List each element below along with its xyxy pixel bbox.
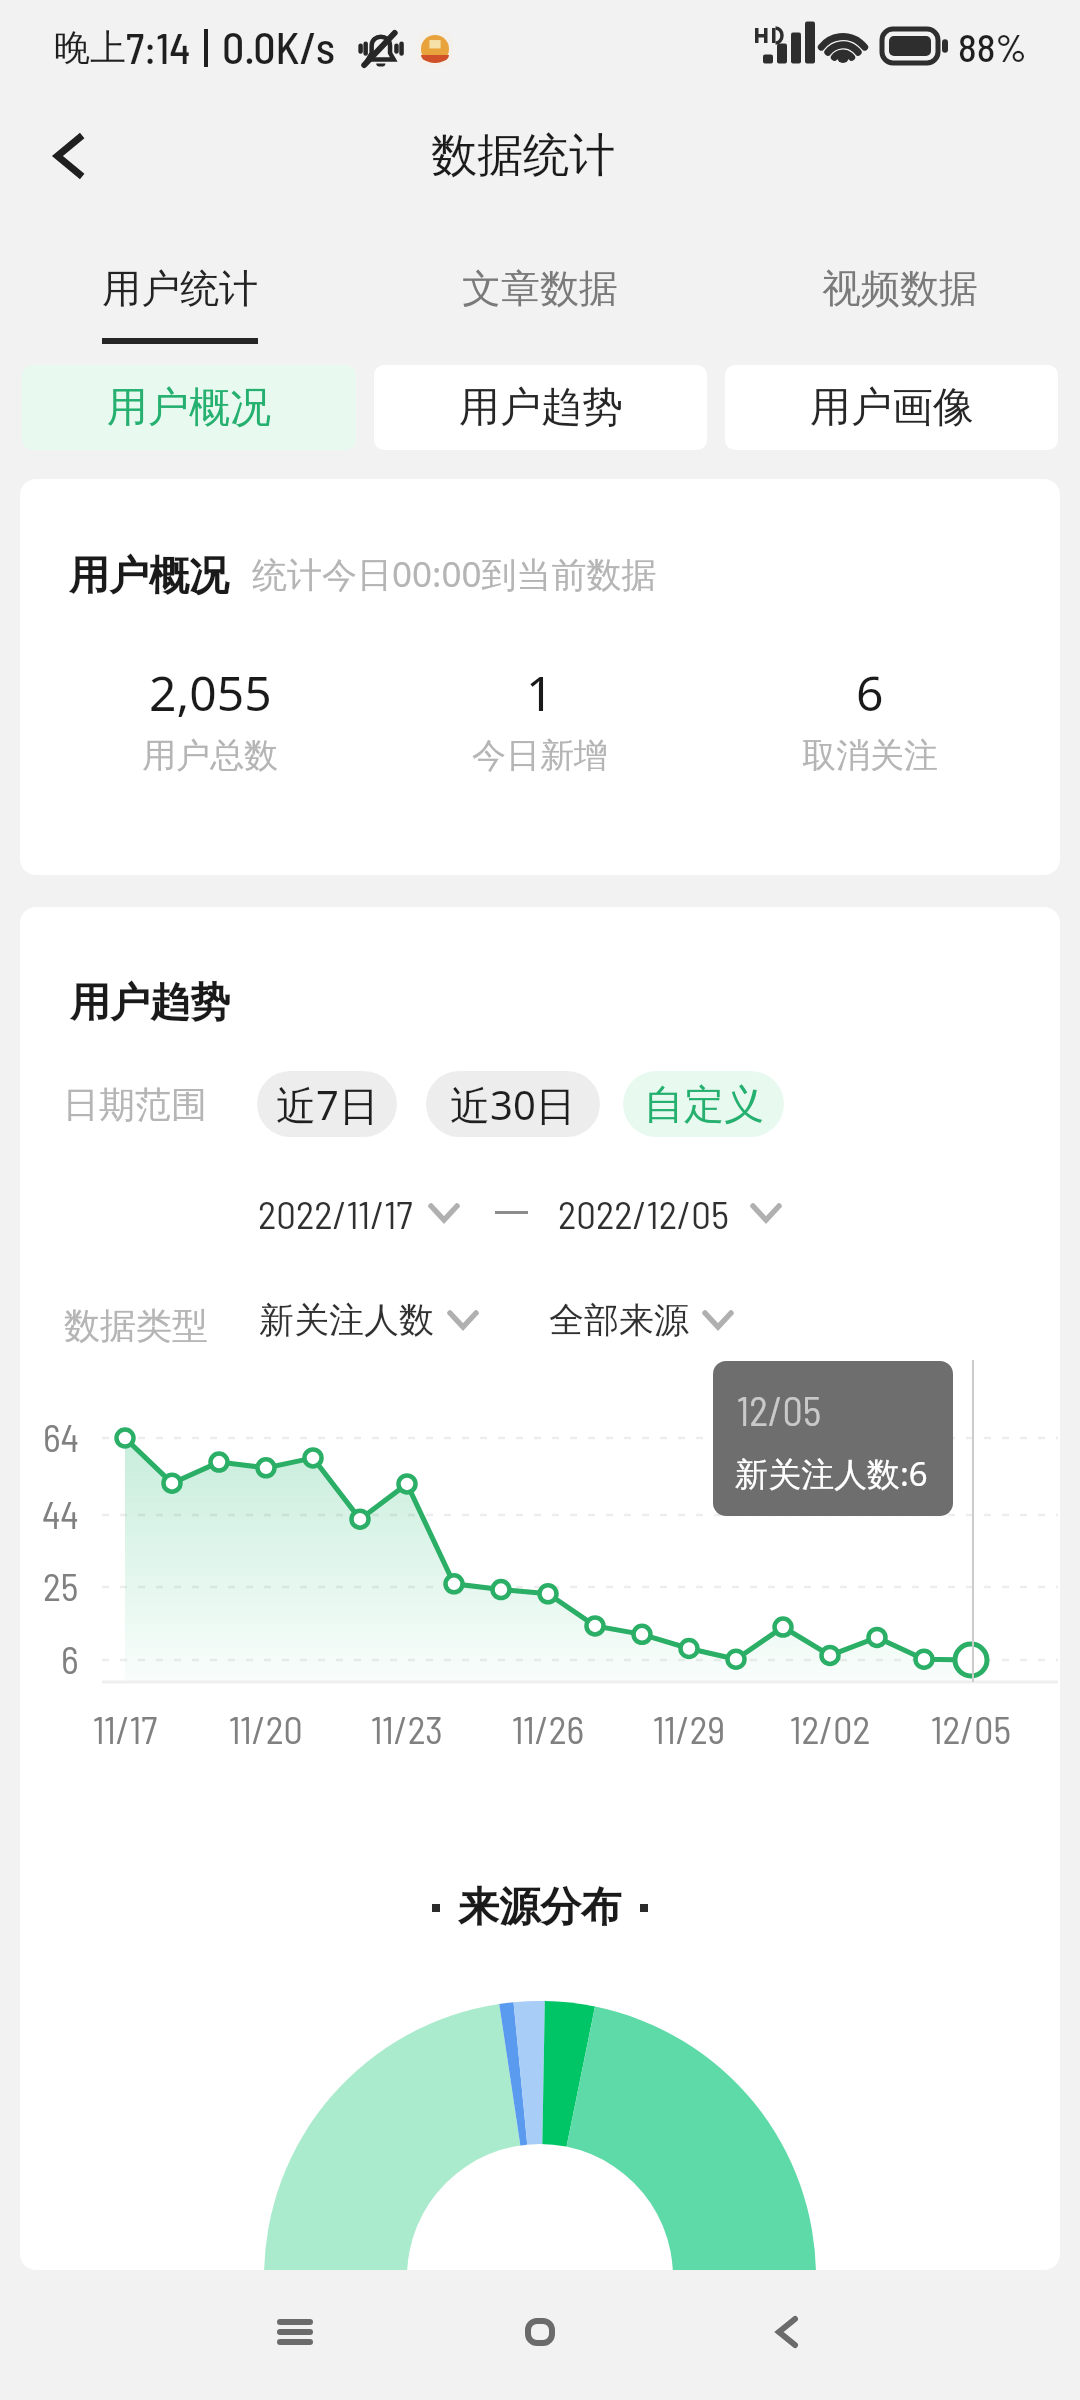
staticText: 用户统计	[102, 264, 258, 313]
staticText: 用户趋势	[459, 382, 623, 434]
staticText: 文章数据	[462, 264, 618, 313]
button[interactable]: 全部来源	[549, 1297, 733, 1343]
button[interactable]: 文章数据	[360, 236, 720, 346]
staticText: 用户画像	[810, 382, 974, 434]
button[interactable]: Recent apps	[235, 2272, 355, 2392]
staticText: 12/05	[931, 1706, 1011, 1752]
staticText: 近7日	[276, 1077, 379, 1132]
staticText: 7:14	[126, 22, 191, 72]
staticText: 今日新增	[472, 734, 608, 777]
staticText: 晚上	[54, 25, 126, 70]
staticText: 来源分布	[458, 1882, 622, 1934]
button[interactable]: 近30日	[426, 1071, 600, 1137]
button[interactable]: 用户画像	[725, 365, 1058, 450]
button[interactable]: 2022/11/17	[258, 1190, 459, 1236]
button[interactable]: 用户趋势	[374, 365, 707, 450]
staticText: 11/23	[371, 1706, 443, 1752]
staticText: 用户趋势	[70, 977, 230, 1027]
staticText: 64	[43, 1414, 79, 1460]
button[interactable]: 用户概况	[22, 365, 356, 450]
staticText: 0.0K/s	[222, 20, 336, 73]
staticText: 自定义	[644, 1079, 764, 1129]
button[interactable]: 2022/12/05	[558, 1190, 781, 1236]
staticText: 11/26	[512, 1706, 585, 1752]
staticText: 11/29	[653, 1706, 725, 1752]
button[interactable]: 视频数据	[720, 236, 1080, 346]
staticText: 11/17	[93, 1706, 158, 1752]
staticText: 取消关注	[802, 734, 938, 777]
button[interactable]: Back	[20, 108, 116, 204]
button[interactable]: 新关注人数	[259, 1297, 478, 1343]
button[interactable]: 近7日	[257, 1071, 397, 1137]
staticText: 12/05	[737, 1386, 822, 1434]
button[interactable]: 用户统计	[0, 236, 360, 346]
staticText: 用户总数	[142, 734, 278, 777]
staticText: 统计今日00:00到当前数据	[252, 550, 657, 598]
button[interactable]: Back	[727, 2272, 847, 2392]
staticText: 新关注人数	[259, 1298, 434, 1342]
staticText: 2022/12/05	[558, 1190, 729, 1236]
staticText: 近30日	[450, 1077, 576, 1132]
staticText: 用户概况	[69, 550, 229, 600]
button[interactable]: Home	[480, 2272, 600, 2392]
staticText: 视频数据	[822, 264, 978, 313]
staticText: 新关注人数:6	[735, 1451, 928, 1496]
staticText: 1	[526, 660, 554, 725]
staticText: 数据统计	[431, 127, 615, 185]
staticText: 12/02	[790, 1706, 871, 1752]
staticText: 数据类型	[64, 1303, 208, 1348]
staticText: 88%	[958, 23, 1027, 70]
staticText: 2022/11/17	[258, 1190, 413, 1236]
staticText: 44	[42, 1491, 79, 1537]
staticText: 全部来源	[549, 1298, 689, 1342]
staticText: 11/20	[229, 1706, 303, 1752]
staticText: 日期范围	[63, 1082, 207, 1127]
staticText: 25	[43, 1563, 79, 1609]
button[interactable]: 自定义	[623, 1071, 784, 1137]
staticText: 2,055	[149, 660, 272, 725]
staticText: 用户概况	[107, 382, 271, 434]
staticText: 6	[61, 1636, 79, 1682]
staticText: 6	[856, 660, 884, 725]
